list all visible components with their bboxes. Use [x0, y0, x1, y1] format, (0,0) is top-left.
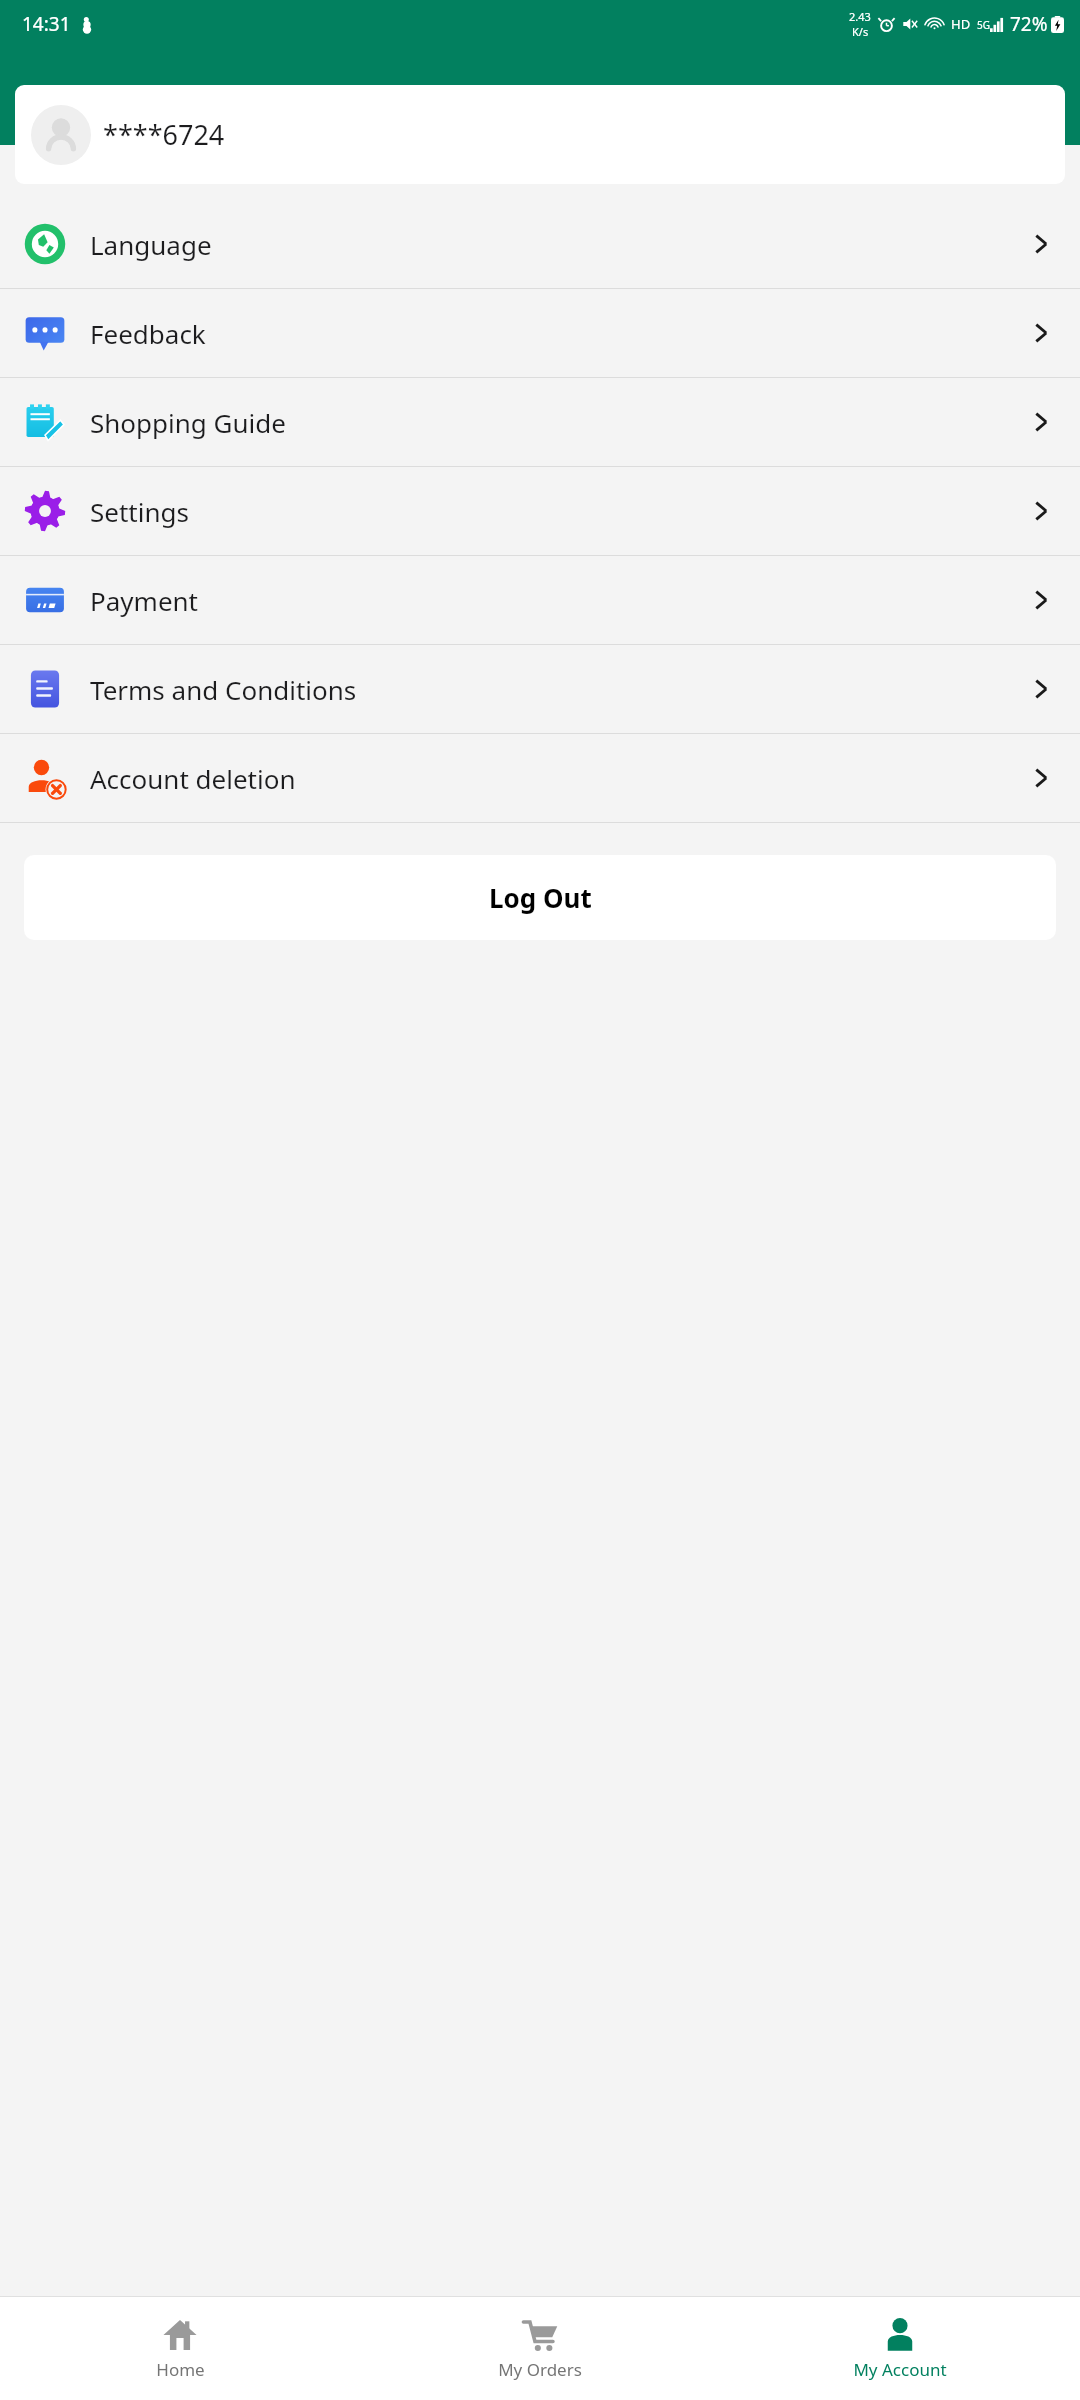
button[interactable]: Shopping Guide	[0, 378, 1080, 466]
button[interactable]: My Account	[720, 2297, 1080, 2400]
button[interactable]: Terms and Conditions	[0, 645, 1080, 733]
staticText: Language	[90, 227, 1002, 262]
staticText: 2.43	[849, 9, 871, 24]
button[interactable]: Feedback	[0, 289, 1080, 377]
staticText: 5G	[977, 18, 990, 32]
staticText: Settings	[90, 494, 1002, 529]
staticText: My Account	[853, 2358, 947, 2381]
staticText: HD	[951, 15, 971, 33]
staticText: My Orders	[498, 2358, 582, 2381]
button[interactable]: Log Out	[24, 855, 1056, 940]
staticText: K/s	[852, 24, 869, 39]
button[interactable]: My Orders	[360, 2297, 720, 2400]
staticText: Terms and Conditions	[90, 672, 1002, 707]
button[interactable]: ****6724	[15, 85, 1065, 184]
button[interactable]: Account deletion	[0, 734, 1080, 822]
staticText: Shopping Guide	[90, 405, 1002, 440]
staticText: Log Out	[489, 880, 592, 915]
staticText: Home	[156, 2358, 205, 2381]
staticText: 72%	[1010, 11, 1048, 37]
button[interactable]: Home	[0, 2297, 360, 2400]
staticText: Feedback	[90, 316, 1002, 351]
staticText: Account deletion	[90, 761, 1002, 796]
staticText: Payment	[90, 583, 1002, 618]
button[interactable]: Settings	[0, 467, 1080, 555]
button[interactable]: Language	[0, 200, 1080, 288]
staticText: ****6724	[103, 116, 225, 153]
button[interactable]: Payment	[0, 556, 1080, 644]
staticText: 14:31	[22, 11, 71, 37]
